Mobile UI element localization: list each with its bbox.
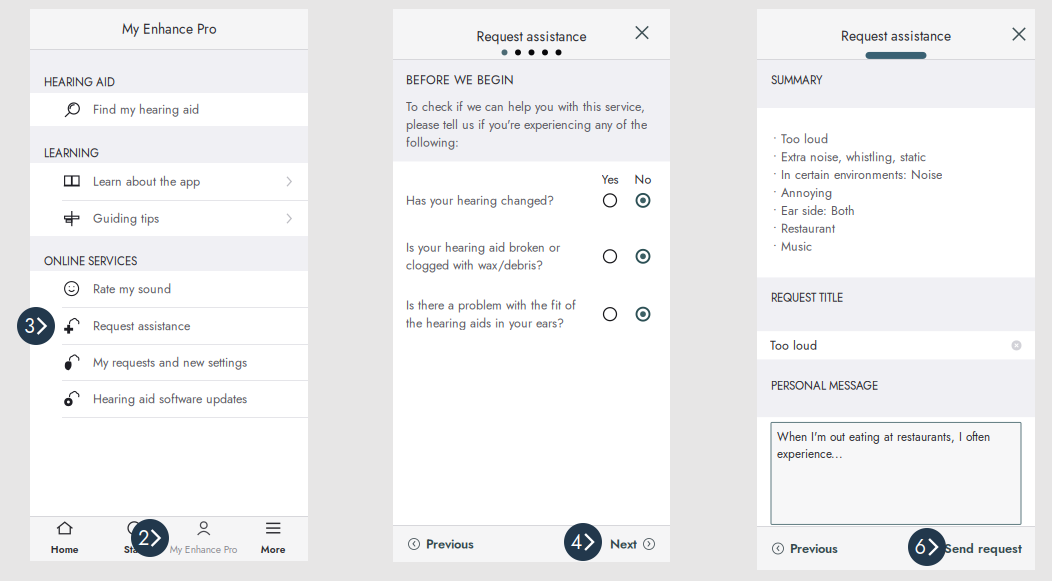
staticText: Is there a problem with the fit of the h… xyxy=(406,296,576,332)
staticText: Previous xyxy=(426,535,474,553)
button[interactable]: Request assistance xyxy=(30,308,308,344)
button[interactable]: Next xyxy=(608,524,657,564)
staticText: ONLINE SERVICES xyxy=(44,253,137,270)
staticText: • xyxy=(773,184,777,202)
button[interactable]: Home xyxy=(30,517,99,561)
button[interactable]: Learn about the app xyxy=(30,163,308,200)
staticText: My requests and new settings xyxy=(93,353,247,371)
staticText: Music xyxy=(781,237,812,255)
staticText: Rate my sound xyxy=(93,280,171,298)
button[interactable]: More xyxy=(238,517,308,561)
staticText: Request assistance xyxy=(841,26,951,46)
staticText: 4 xyxy=(570,527,582,556)
staticText: SUMMARY xyxy=(771,72,822,89)
staticText: 3 xyxy=(24,311,35,340)
button[interactable]: Previous xyxy=(406,524,476,564)
staticText: Too loud xyxy=(781,130,828,148)
button[interactable]: Close xyxy=(626,17,670,49)
staticText: Too loud xyxy=(770,336,817,354)
staticText: • xyxy=(773,202,777,220)
staticText: Hearing aid software updates xyxy=(93,390,247,408)
staticText: Request assistance xyxy=(93,317,190,335)
staticText: 6 xyxy=(914,532,926,561)
staticText: Annoying xyxy=(781,184,832,202)
staticText: Ear side: Both xyxy=(781,202,855,220)
staticText: REQUEST TITLE xyxy=(771,289,843,306)
staticText: Is your hearing aid broken or clogged wi… xyxy=(406,238,560,274)
staticText: Start xyxy=(124,542,145,557)
staticText: BEFORE WE BEGIN xyxy=(406,71,514,89)
staticText: More xyxy=(261,542,286,557)
button[interactable]: Rate my sound xyxy=(30,271,308,307)
staticText: HEARING AID xyxy=(44,74,115,91)
staticText: My Enhance Pro xyxy=(170,542,238,557)
button[interactable]: Hearing aid software updates xyxy=(30,381,308,417)
button[interactable]: Find my hearing aid xyxy=(30,93,308,126)
staticText: Has your hearing changed? xyxy=(406,191,554,209)
staticText: To check if we can help you with this se… xyxy=(406,98,647,151)
staticText: Learn about the app xyxy=(93,172,200,190)
staticText: Home xyxy=(51,542,79,557)
button[interactable] xyxy=(598,244,622,268)
staticText: Send request xyxy=(944,539,1022,558)
staticText: • xyxy=(773,148,777,166)
staticText: Yes xyxy=(601,170,618,188)
button[interactable]: Send request xyxy=(944,528,1022,569)
staticText: • xyxy=(773,166,777,184)
staticText: Find my hearing aid xyxy=(93,100,199,118)
staticText: When I'm out eating at restaurants, I of… xyxy=(777,428,990,462)
staticText: PERSONAL MESSAGE xyxy=(771,377,878,394)
button[interactable]: Close xyxy=(1003,18,1035,50)
staticText: No xyxy=(634,170,651,188)
staticText: Restaurant xyxy=(781,220,835,237)
staticText: • xyxy=(773,237,777,255)
staticText: Request assistance xyxy=(476,27,586,46)
staticText: Guiding tips xyxy=(93,209,159,227)
button[interactable] xyxy=(631,188,655,212)
button[interactable] xyxy=(631,302,655,326)
button[interactable] xyxy=(598,188,622,212)
button[interactable] xyxy=(631,244,655,268)
button[interactable]: Previous xyxy=(770,528,840,569)
staticText: LEARNING xyxy=(44,145,99,162)
button[interactable]: Start xyxy=(99,517,169,561)
staticText: My Enhance Pro xyxy=(122,19,216,39)
button[interactable]: My Enhance Pro xyxy=(169,517,238,561)
staticText: • xyxy=(773,220,777,237)
button[interactable]: Guiding tips xyxy=(30,201,308,236)
staticText: In certain environments: Noise xyxy=(781,166,942,184)
staticText: • xyxy=(773,130,777,148)
button[interactable]: My requests and new settings xyxy=(30,345,308,380)
staticText: Extra noise, whistling, static xyxy=(781,148,926,166)
button[interactable]: Too loud xyxy=(757,331,1035,359)
staticText: Previous xyxy=(790,539,838,558)
button[interactable] xyxy=(598,302,622,326)
staticText: Next xyxy=(610,535,637,553)
staticText: 2 xyxy=(138,523,149,552)
